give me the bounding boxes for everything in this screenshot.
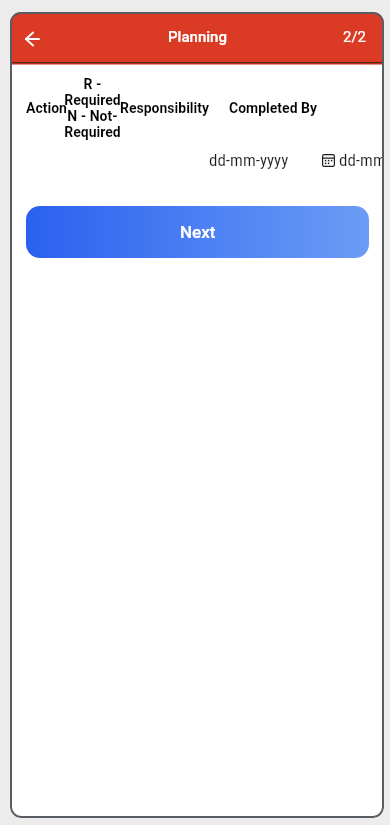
button[interactable]: Next: [26, 206, 369, 258]
staticText: Completed By: [229, 100, 318, 116]
staticText: Responsibility: [120, 100, 210, 116]
button[interactable]: Back: [12, 19, 52, 59]
staticText: Planning: [168, 28, 227, 46]
staticText: Action: [26, 100, 67, 116]
staticText: R - Required N - Not-Required: [63, 76, 122, 140]
staticText: Next: [180, 222, 216, 242]
staticText: 2/2: [343, 28, 367, 46]
staticText: dd-mm-yyyy: [209, 150, 289, 170]
staticText: dd-mm-yyyy: [339, 150, 384, 170]
